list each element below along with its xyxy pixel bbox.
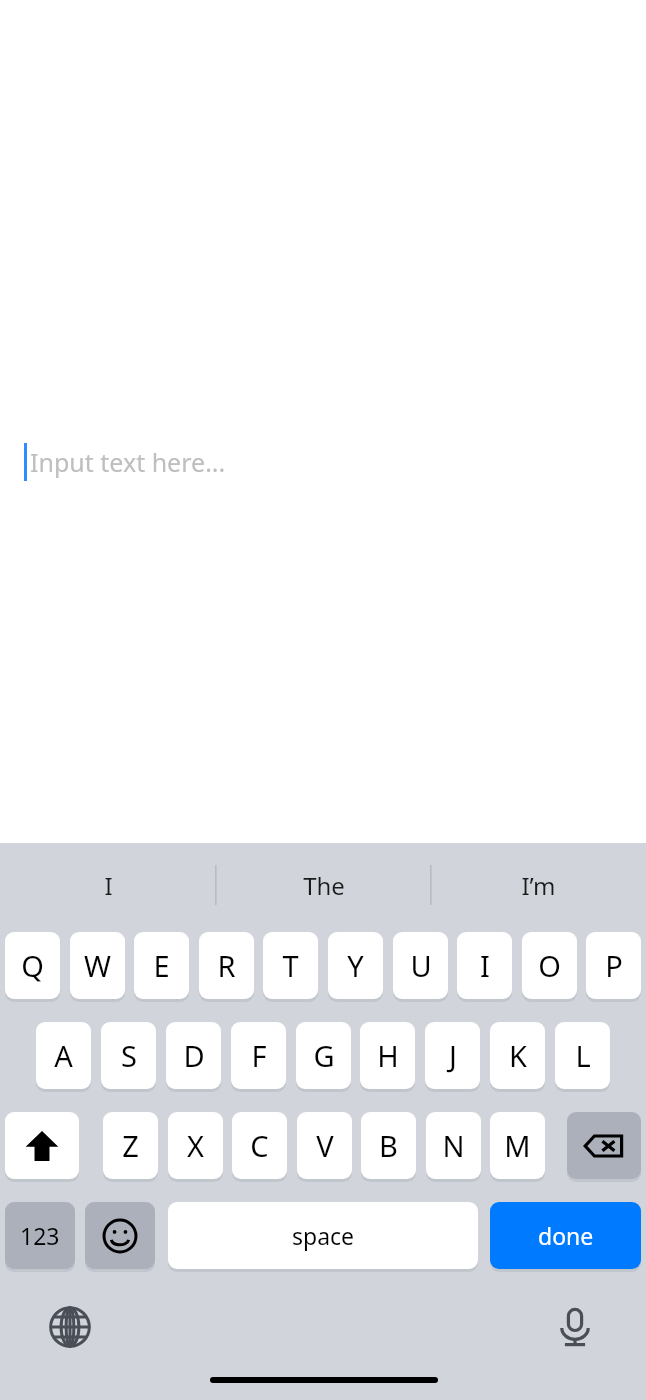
button[interactable]: P xyxy=(586,932,641,999)
button[interactable]: done xyxy=(490,1202,641,1269)
staticText: I xyxy=(480,946,490,985)
button[interactable]: H xyxy=(360,1022,415,1089)
button[interactable]: Dictate xyxy=(543,1295,607,1359)
staticText: C xyxy=(250,1126,269,1165)
button[interactable]: K xyxy=(490,1022,545,1089)
button[interactable]: V xyxy=(297,1112,352,1179)
button[interactable]: A xyxy=(36,1022,91,1089)
staticText: W xyxy=(84,946,111,985)
staticText: O xyxy=(538,946,561,985)
staticText: V xyxy=(316,1126,334,1165)
staticText: done xyxy=(538,1220,594,1251)
staticText: I xyxy=(104,869,113,902)
button[interactable]: G xyxy=(296,1022,351,1089)
staticText: H xyxy=(377,1036,399,1075)
staticText: M xyxy=(504,1126,531,1165)
button[interactable]: S xyxy=(101,1022,156,1089)
staticText: Q xyxy=(21,946,44,985)
staticText: I’m xyxy=(521,869,556,902)
button[interactable]: Emoji xyxy=(85,1202,155,1269)
button[interactable]: D xyxy=(166,1022,221,1089)
staticText: X xyxy=(187,1126,204,1165)
staticText: G xyxy=(313,1036,335,1075)
button[interactable]: Change keyboard xyxy=(38,1295,102,1359)
button[interactable]: Z xyxy=(103,1112,158,1179)
button[interactable]: X xyxy=(168,1112,223,1179)
staticText: K xyxy=(509,1036,527,1075)
staticText: Input text here... xyxy=(30,445,226,479)
button[interactable]: U xyxy=(393,932,448,999)
button[interactable]: N xyxy=(426,1112,481,1179)
staticText: D xyxy=(183,1036,205,1075)
button[interactable]: R xyxy=(199,932,254,999)
button[interactable]: Shift xyxy=(5,1112,79,1179)
staticText: R xyxy=(217,946,236,985)
staticText: P xyxy=(605,946,623,985)
button[interactable]: F xyxy=(231,1022,286,1089)
button[interactable]: Input text here... xyxy=(0,434,646,490)
staticText: 123 xyxy=(20,1220,60,1251)
button[interactable]: B xyxy=(361,1112,416,1179)
staticText: L xyxy=(575,1036,591,1075)
button[interactable]: Y xyxy=(328,932,383,999)
button[interactable]: The xyxy=(216,843,431,927)
button[interactable]: M xyxy=(490,1112,545,1179)
button[interactable]: Backspace xyxy=(567,1112,641,1179)
staticText: E xyxy=(153,946,170,985)
button[interactable]: J xyxy=(425,1022,480,1089)
button[interactable]: C xyxy=(232,1112,287,1179)
button[interactable]: W xyxy=(70,932,125,999)
button[interactable]: Q xyxy=(5,932,60,999)
button[interactable]: space xyxy=(168,1202,478,1269)
button[interactable]: I’m xyxy=(431,843,646,927)
button[interactable]: E xyxy=(134,932,189,999)
staticText: space xyxy=(292,1220,355,1251)
staticText: F xyxy=(251,1036,267,1075)
button[interactable]: I xyxy=(457,932,512,999)
staticText: N xyxy=(442,1126,465,1165)
staticText: Y xyxy=(347,946,364,985)
button[interactable]: L xyxy=(555,1022,610,1089)
staticText: B xyxy=(379,1126,398,1165)
button[interactable]: 123 xyxy=(5,1202,75,1269)
staticText: S xyxy=(121,1036,137,1075)
staticText: J xyxy=(449,1036,457,1075)
button[interactable]: O xyxy=(522,932,577,999)
staticText: U xyxy=(410,946,432,985)
staticText: Z xyxy=(122,1126,139,1165)
button[interactable]: T xyxy=(263,932,318,999)
button[interactable]: I xyxy=(0,843,216,927)
staticText: T xyxy=(282,946,299,985)
staticText: A xyxy=(54,1036,73,1075)
staticText: The xyxy=(303,869,345,902)
